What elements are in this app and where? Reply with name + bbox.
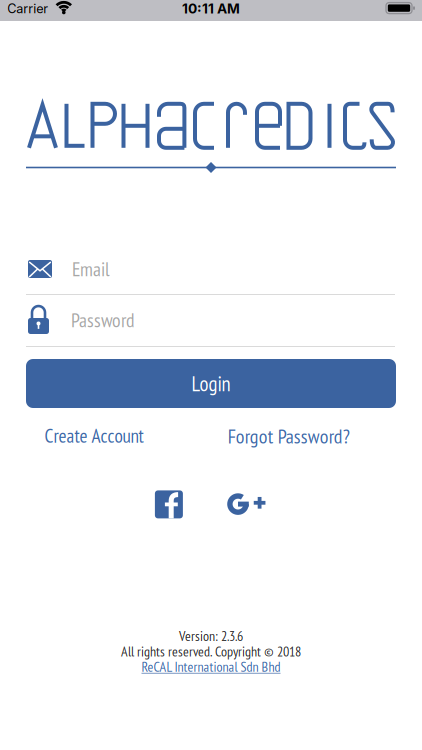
button[interactable]: Forgot Password? bbox=[228, 423, 350, 449]
staticText: Password bbox=[71, 307, 135, 333]
button[interactable]: Sign in with Facebook bbox=[155, 490, 183, 518]
staticText: 10:11 AM bbox=[182, 0, 240, 17]
button[interactable]: Email bbox=[28, 251, 396, 287]
staticText: ReCAL International Sdn Bhd bbox=[141, 657, 280, 676]
button[interactable]: Password bbox=[28, 300, 396, 340]
staticText: Login bbox=[191, 370, 230, 397]
button[interactable]: Sign in with Google bbox=[222, 490, 266, 518]
button[interactable]: Login bbox=[26, 359, 396, 408]
staticText: Create Account bbox=[44, 423, 143, 448]
staticText: Carrier bbox=[7, 1, 48, 16]
staticText: All rights reserved. Copyright © 2018 bbox=[121, 642, 301, 660]
staticText: Email bbox=[72, 256, 110, 282]
button[interactable]: Create Account bbox=[44, 423, 143, 448]
staticText: Version: 2.3.6 bbox=[179, 627, 243, 645]
button[interactable]: ReCAL International Sdn Bhd bbox=[141, 657, 280, 676]
staticText: Forgot Password? bbox=[228, 423, 350, 449]
